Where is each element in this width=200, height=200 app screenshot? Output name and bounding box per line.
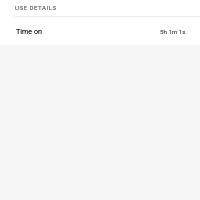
staticText: 5h 1m 1s (160, 28, 186, 35)
button[interactable]: Time on (0, 17, 200, 45)
staticText: Time on (16, 27, 43, 35)
staticText: 5h 1m 1s (160, 28, 186, 35)
staticText: USE DETAILS (15, 4, 57, 11)
staticText: USE DETAILS (15, 4, 57, 11)
staticText: Time on (16, 27, 43, 35)
